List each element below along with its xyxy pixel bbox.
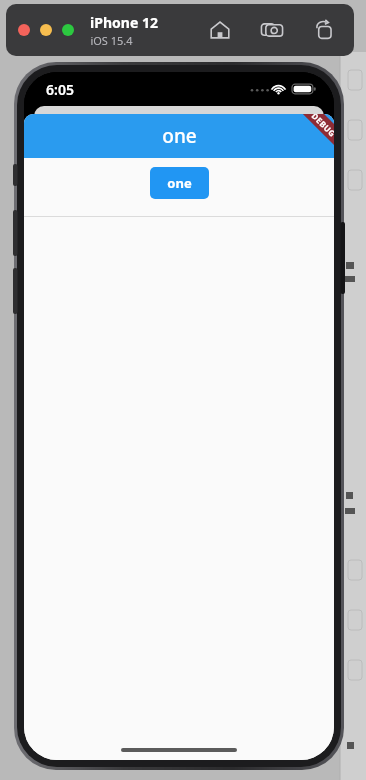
staticText: DEBUG <box>309 114 334 139</box>
staticText: one <box>162 123 197 149</box>
button[interactable]: Close <box>18 24 30 36</box>
staticText: one <box>167 174 192 192</box>
staticText: iOS 15.4 <box>90 33 133 48</box>
button[interactable]: Rotate <box>310 16 338 44</box>
button[interactable]: Screenshot <box>258 16 286 44</box>
button[interactable]: Zoom <box>62 24 74 36</box>
button[interactable]: Home <box>206 16 234 44</box>
staticText: 6:05 <box>46 80 74 99</box>
button[interactable]: Minimise <box>40 24 52 36</box>
staticText: iPhone 12 <box>90 13 158 32</box>
button[interactable]: one <box>150 167 209 199</box>
